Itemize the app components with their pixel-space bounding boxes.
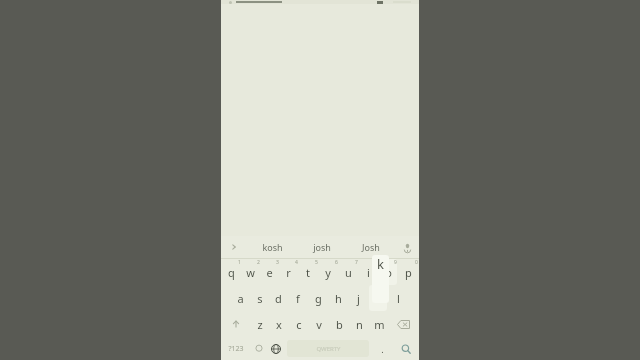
staticText: o <box>385 265 392 280</box>
button[interactable]: Emoji <box>250 339 267 358</box>
button[interactable]: o <box>379 259 397 285</box>
staticText: 4 <box>295 259 298 266</box>
staticText: m <box>374 317 385 332</box>
staticText: n <box>356 317 363 332</box>
staticText: ?123 <box>228 344 244 354</box>
staticText: y <box>325 265 331 280</box>
button[interactable]: i <box>358 259 378 285</box>
button[interactable]: k <box>369 285 387 311</box>
staticText: 3 <box>276 259 279 266</box>
button[interactable]: p <box>398 259 418 285</box>
button[interactable]: b <box>329 311 349 337</box>
staticText: j <box>357 291 360 306</box>
button[interactable]: l <box>388 285 408 311</box>
button[interactable]: s <box>250 285 269 311</box>
staticText: josh <box>313 241 331 253</box>
button[interactable]: g <box>308 285 328 311</box>
button[interactable]: x <box>269 311 289 337</box>
staticText: 6 <box>335 259 338 266</box>
button[interactable]: v <box>309 311 329 337</box>
button[interactable]: t <box>298 259 318 285</box>
staticText: p <box>405 265 412 280</box>
staticText: d <box>275 291 282 306</box>
staticText: QWERTY <box>316 345 341 353</box>
button[interactable]: m <box>369 311 389 337</box>
staticText: w <box>246 265 255 280</box>
staticText: 5 <box>315 259 318 266</box>
staticText: e <box>266 265 273 280</box>
staticText: a <box>237 291 244 306</box>
button[interactable]: ?123 <box>222 339 250 358</box>
staticText: z <box>257 317 263 332</box>
button[interactable]: r <box>279 259 298 285</box>
button[interactable]: f <box>288 285 308 311</box>
button[interactable]: Change keyboard language <box>267 339 284 358</box>
staticText: r <box>286 265 291 280</box>
button[interactable]: Expand suggestions <box>221 236 247 258</box>
button[interactable]: j <box>348 285 368 311</box>
button[interactable]: c <box>289 311 309 337</box>
staticText: q <box>228 265 235 280</box>
button[interactable]: josh <box>297 236 346 258</box>
staticText: k <box>377 255 384 273</box>
button[interactable]: a <box>231 285 250 311</box>
button[interactable]: n <box>349 311 369 337</box>
staticText: 1 <box>238 259 241 266</box>
staticText: x <box>276 317 282 332</box>
staticText: 7 <box>355 259 358 266</box>
staticText: b <box>336 317 343 332</box>
button[interactable]: Delete <box>389 311 418 337</box>
staticText: . <box>381 343 384 355</box>
staticText: 0 <box>415 259 418 266</box>
button[interactable]: u <box>338 259 358 285</box>
staticText: kosh <box>262 241 283 253</box>
button[interactable]: h <box>328 285 348 311</box>
button[interactable]: Shift <box>222 311 250 337</box>
button[interactable]: z <box>250 311 269 337</box>
staticText: 9 <box>394 259 397 266</box>
button[interactable]: Search <box>393 339 418 358</box>
button[interactable]: Voice input <box>395 236 419 258</box>
staticText: v <box>316 317 322 332</box>
staticText: 2 <box>257 259 260 266</box>
staticText: l <box>397 291 400 306</box>
staticText: f <box>296 291 300 306</box>
staticText: u <box>345 265 352 280</box>
button[interactable]: kosh <box>247 236 297 258</box>
staticText: s <box>257 291 263 306</box>
staticText: h <box>335 291 342 306</box>
staticText: i <box>367 265 370 280</box>
button[interactable]: y <box>318 259 338 285</box>
button[interactable]: w <box>241 259 260 285</box>
button[interactable]: Space <box>287 340 369 357</box>
button[interactable]: . <box>372 339 393 358</box>
button[interactable]: Josh <box>346 236 395 258</box>
button[interactable]: q <box>222 259 241 285</box>
staticText: c <box>296 317 302 332</box>
button[interactable]: e <box>260 259 279 285</box>
staticText: t <box>306 265 310 280</box>
staticText: g <box>315 291 322 306</box>
button[interactable]: d <box>269 285 288 311</box>
staticText: Josh <box>362 241 380 253</box>
